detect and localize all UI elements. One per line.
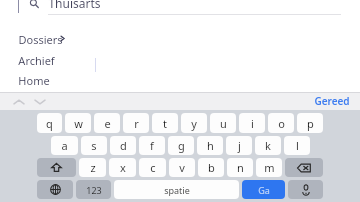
staticText: r xyxy=(134,116,139,131)
button[interactable]: t xyxy=(152,113,178,133)
button[interactable]: g xyxy=(168,136,194,155)
staticText: t xyxy=(163,116,167,131)
button[interactable]: Backspace xyxy=(285,158,323,177)
button[interactable]: o xyxy=(268,113,294,133)
staticText: k xyxy=(265,138,271,153)
staticText: Thuisarts xyxy=(48,0,101,10)
staticText: e xyxy=(104,116,111,131)
staticText: 123 xyxy=(86,184,102,196)
staticText: v xyxy=(179,160,185,175)
button[interactable]: f xyxy=(139,136,165,155)
button[interactable]: y xyxy=(181,113,207,133)
staticText: x xyxy=(120,160,126,175)
staticText: d xyxy=(120,138,127,153)
staticText: o xyxy=(278,116,285,131)
staticText: w xyxy=(74,116,83,131)
button[interactable]: Archief xyxy=(0,51,360,69)
staticText: Archief xyxy=(18,53,55,68)
button[interactable]: Home xyxy=(0,71,360,89)
button[interactable]: spatie xyxy=(114,180,239,199)
staticText: l xyxy=(296,138,299,153)
button[interactable]: Previous field xyxy=(10,96,28,108)
button[interactable]: Dossiers xyxy=(0,30,360,48)
staticText: Ga xyxy=(258,184,270,196)
staticText: i xyxy=(251,116,254,131)
button[interactable]: m xyxy=(256,158,282,177)
staticText: u xyxy=(220,116,227,131)
button[interactable]: j xyxy=(226,136,252,155)
button[interactable]: s xyxy=(81,136,107,155)
button[interactable]: v xyxy=(169,158,195,177)
button[interactable]: c xyxy=(139,158,166,177)
button[interactable]: Dictate xyxy=(288,180,323,199)
staticText: Dossiers xyxy=(18,32,63,47)
staticText: g xyxy=(178,138,185,153)
button[interactable]: e xyxy=(94,113,120,133)
staticText: s xyxy=(91,138,97,153)
staticText: Home xyxy=(18,73,50,88)
button[interactable]: Shift xyxy=(37,158,76,177)
staticText: q xyxy=(46,116,53,131)
button[interactable]: i xyxy=(239,113,265,133)
button[interactable]: w xyxy=(65,113,91,133)
button[interactable]: b xyxy=(198,158,224,177)
button[interactable]: h xyxy=(197,136,223,155)
button[interactable]: Search xyxy=(0,0,360,15)
button[interactable]: k xyxy=(255,136,281,155)
button[interactable]: n xyxy=(227,158,253,177)
staticText: z xyxy=(90,160,96,175)
button[interactable]: d xyxy=(110,136,136,155)
button[interactable]: p xyxy=(297,113,323,133)
button[interactable]: u xyxy=(210,113,236,133)
staticText: spatie xyxy=(164,184,190,196)
button[interactable]: l xyxy=(284,136,310,155)
staticText: n xyxy=(237,160,244,175)
button[interactable]: a xyxy=(51,136,78,155)
button[interactable]: Next field xyxy=(31,96,49,108)
button[interactable]: Change keyboard xyxy=(37,180,73,199)
staticText: h xyxy=(207,138,214,153)
button[interactable]: q xyxy=(37,113,62,133)
staticText: c xyxy=(150,160,156,175)
staticText: Gereed xyxy=(314,94,350,108)
staticText: a xyxy=(61,138,68,153)
staticText: y xyxy=(191,116,197,131)
button[interactable]: 123 xyxy=(76,180,111,199)
button[interactable]: Ga xyxy=(242,180,285,199)
staticText: b xyxy=(208,160,215,175)
staticText: f xyxy=(150,138,154,153)
staticText: m xyxy=(264,160,275,175)
button[interactable]: x xyxy=(109,158,136,177)
other: Search xyxy=(29,0,39,8)
button[interactable]: z xyxy=(79,158,106,177)
button[interactable]: Gereed xyxy=(310,92,354,110)
button[interactable]: r xyxy=(123,113,149,133)
staticText: j xyxy=(238,138,241,153)
staticText: p xyxy=(307,116,314,131)
